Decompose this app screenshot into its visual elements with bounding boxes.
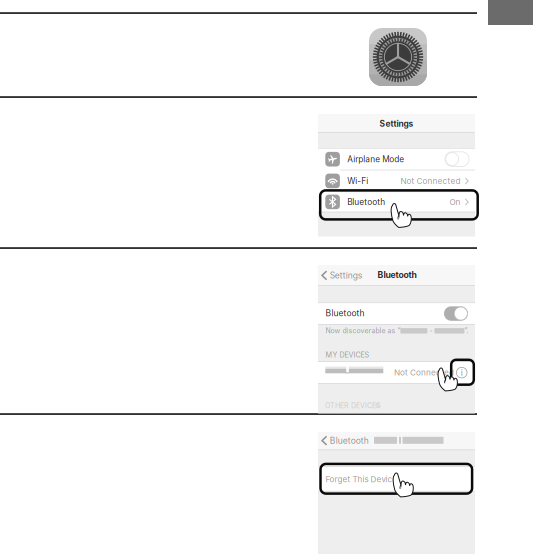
staticText: Not Connected <box>394 368 454 377</box>
staticText: On <box>450 197 461 207</box>
staticText: Now discoverable as “ <box>325 327 400 335</box>
staticText: OTHER DEVICES <box>325 401 381 410</box>
button[interactable]: Airplane Mode <box>318 149 475 170</box>
staticText: Bluetooth <box>325 308 364 318</box>
staticText: Airplane Mode <box>347 154 404 164</box>
staticText: Settings <box>379 119 413 129</box>
staticText: Bluetooth <box>347 197 385 207</box>
staticText: ”. <box>464 327 468 335</box>
staticText: - <box>427 327 434 335</box>
button[interactable]: Not Connected <box>318 362 475 383</box>
button[interactable]: Bluetooth <box>318 432 370 449</box>
staticText: Wi-Fi <box>347 176 368 186</box>
button[interactable]: Wi-Fi <box>318 170 475 191</box>
staticText: Bluetooth <box>330 435 369 446</box>
staticText: MY DEVICES <box>325 351 369 359</box>
staticText: Bluetooth <box>377 270 416 280</box>
staticText: Forget This Device <box>326 474 398 484</box>
staticText: i <box>461 367 463 378</box>
staticText: Settings <box>330 270 363 280</box>
button[interactable]: Forget This Device <box>318 467 475 491</box>
button[interactable]: Bluetooth <box>318 192 475 212</box>
button[interactable]: Settings <box>318 266 368 285</box>
staticText: Not Connected <box>401 176 461 186</box>
